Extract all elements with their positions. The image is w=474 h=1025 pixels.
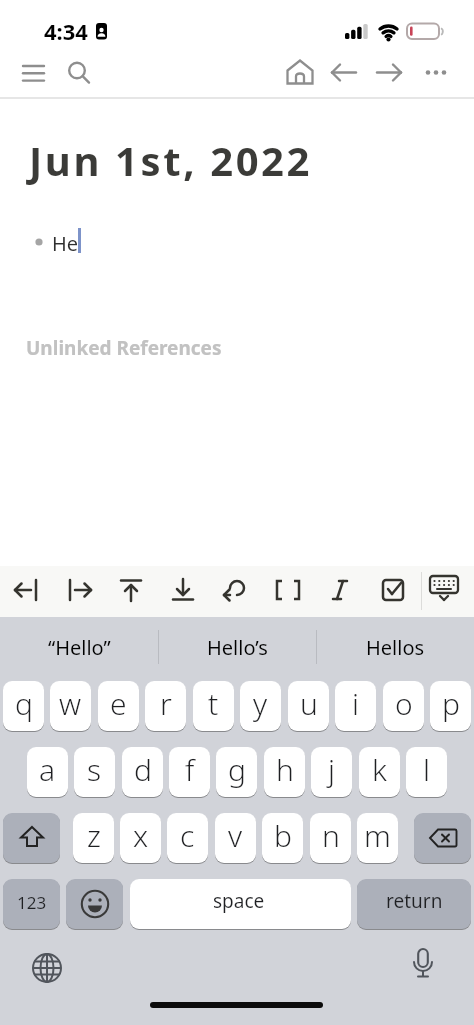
button[interactable]: p [430,681,471,731]
staticText: m [364,815,391,856]
button[interactable]: k [359,747,400,797]
staticText: e [110,683,127,724]
button[interactable]: b [262,813,303,863]
staticText: return [386,888,443,914]
staticText: g [228,749,246,790]
button[interactable]: z [73,813,114,863]
staticText: n [322,815,340,856]
button[interactable] [320,569,360,613]
staticText: Unlinked References [26,335,222,361]
staticText: s [87,749,102,790]
button[interactable] [163,569,203,613]
button[interactable]: f [169,747,210,797]
staticText: i [352,683,359,724]
button[interactable]: w [50,681,91,731]
button[interactable]: u [288,681,329,731]
button[interactable]: Hellos [316,619,474,675]
staticText: o [395,683,413,724]
staticText: l [423,749,430,790]
staticText: v [228,815,243,856]
button[interactable] [370,54,408,92]
button[interactable] [27,948,67,988]
button[interactable]: v [215,813,256,863]
button[interactable] [325,54,363,92]
staticText: 123 [17,891,47,914]
button[interactable]: h [264,747,305,797]
staticText: y [253,683,268,724]
button[interactable] [111,569,151,613]
staticText: p [442,683,460,724]
button[interactable]: j [311,747,352,797]
button[interactable]: return [357,879,471,929]
button[interactable] [403,946,443,988]
button[interactable] [59,569,99,613]
staticText: f [185,749,195,790]
button[interactable]: x [120,813,161,863]
staticText: u [300,683,318,724]
staticText: Hello’s [207,634,268,661]
staticText: t [208,683,219,724]
button[interactable]: a [27,747,68,797]
button[interactable] [7,569,47,613]
staticText: space [213,888,265,914]
button[interactable]: Hello’s [158,619,316,675]
button[interactable]: l [406,747,447,797]
staticText: z [87,815,101,856]
staticText: Jun 1st, 2022 [29,133,313,187]
button[interactable]: d [122,747,163,797]
button[interactable]: o [383,681,424,731]
staticText: x [133,815,149,856]
button[interactable]: e [98,681,139,731]
button[interactable] [425,569,465,613]
button[interactable]: c [167,813,208,863]
button[interactable] [66,879,123,929]
button[interactable] [14,56,54,90]
button[interactable]: space [130,879,351,929]
button[interactable]: “Hello” [0,619,158,675]
button[interactable]: r [145,681,186,731]
staticText: j [328,749,335,790]
button[interactable] [216,569,256,613]
staticText: d [134,749,152,790]
button[interactable]: y [240,681,281,731]
button[interactable] [3,813,60,863]
staticText: r [160,683,172,724]
staticText: h [276,749,294,790]
staticText: q [15,683,33,724]
button[interactable]: m [357,813,398,863]
button[interactable] [373,569,413,613]
staticText: “Hello” [48,634,111,661]
button[interactable]: q [3,681,44,731]
button[interactable]: 123 [3,879,60,929]
button[interactable]: i [335,681,376,731]
staticText: c [180,815,195,856]
staticText: w [59,683,82,724]
button[interactable]: t [193,681,234,731]
button[interactable] [414,813,471,863]
staticText: He [52,230,79,257]
staticText: 4:34 [44,16,88,46]
button[interactable] [417,54,455,92]
button[interactable] [281,54,319,92]
button[interactable] [268,569,308,613]
staticText: a [39,749,56,790]
button[interactable]: s [74,747,115,797]
button[interactable] [60,54,98,92]
staticText: b [274,815,292,856]
button[interactable]: n [310,813,351,863]
button[interactable]: g [216,747,257,797]
staticText: Hellos [366,634,425,661]
staticText: k [372,749,387,790]
